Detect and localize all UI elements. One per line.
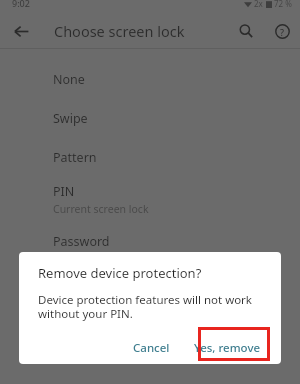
staticText: Device protection features will not work… [38, 292, 269, 322]
staticText: Pattern [53, 149, 97, 166]
staticText: Choose screen lock [54, 21, 185, 41]
button[interactable]: Swipe [0, 99, 300, 138]
button[interactable]: Help [267, 16, 297, 46]
button[interactable]: Yes, remove [185, 335, 270, 361]
button[interactable]: Cancel [124, 335, 179, 361]
staticText: Cancel [133, 340, 170, 356]
staticText: Password [53, 233, 110, 250]
staticText: Swipe [53, 110, 88, 127]
staticText: 9:02 [12, 0, 30, 9]
staticText: ? [280, 26, 285, 38]
button[interactable]: None [0, 60, 300, 99]
button[interactable]: Back [8, 18, 34, 44]
staticText: Yes, remove [194, 340, 261, 356]
staticText: 72 % [274, 0, 292, 9]
button[interactable]: Password [0, 222, 300, 261]
staticText: PIN [53, 183, 75, 200]
button[interactable]: Pattern [0, 138, 300, 177]
staticText: None [53, 71, 85, 88]
button[interactable]: PIN [0, 177, 300, 222]
staticText: Remove device protection? [38, 264, 202, 282]
button[interactable]: Search [231, 16, 261, 46]
staticText: Current screen lock [53, 202, 149, 216]
staticText: 2x [254, 0, 263, 9]
